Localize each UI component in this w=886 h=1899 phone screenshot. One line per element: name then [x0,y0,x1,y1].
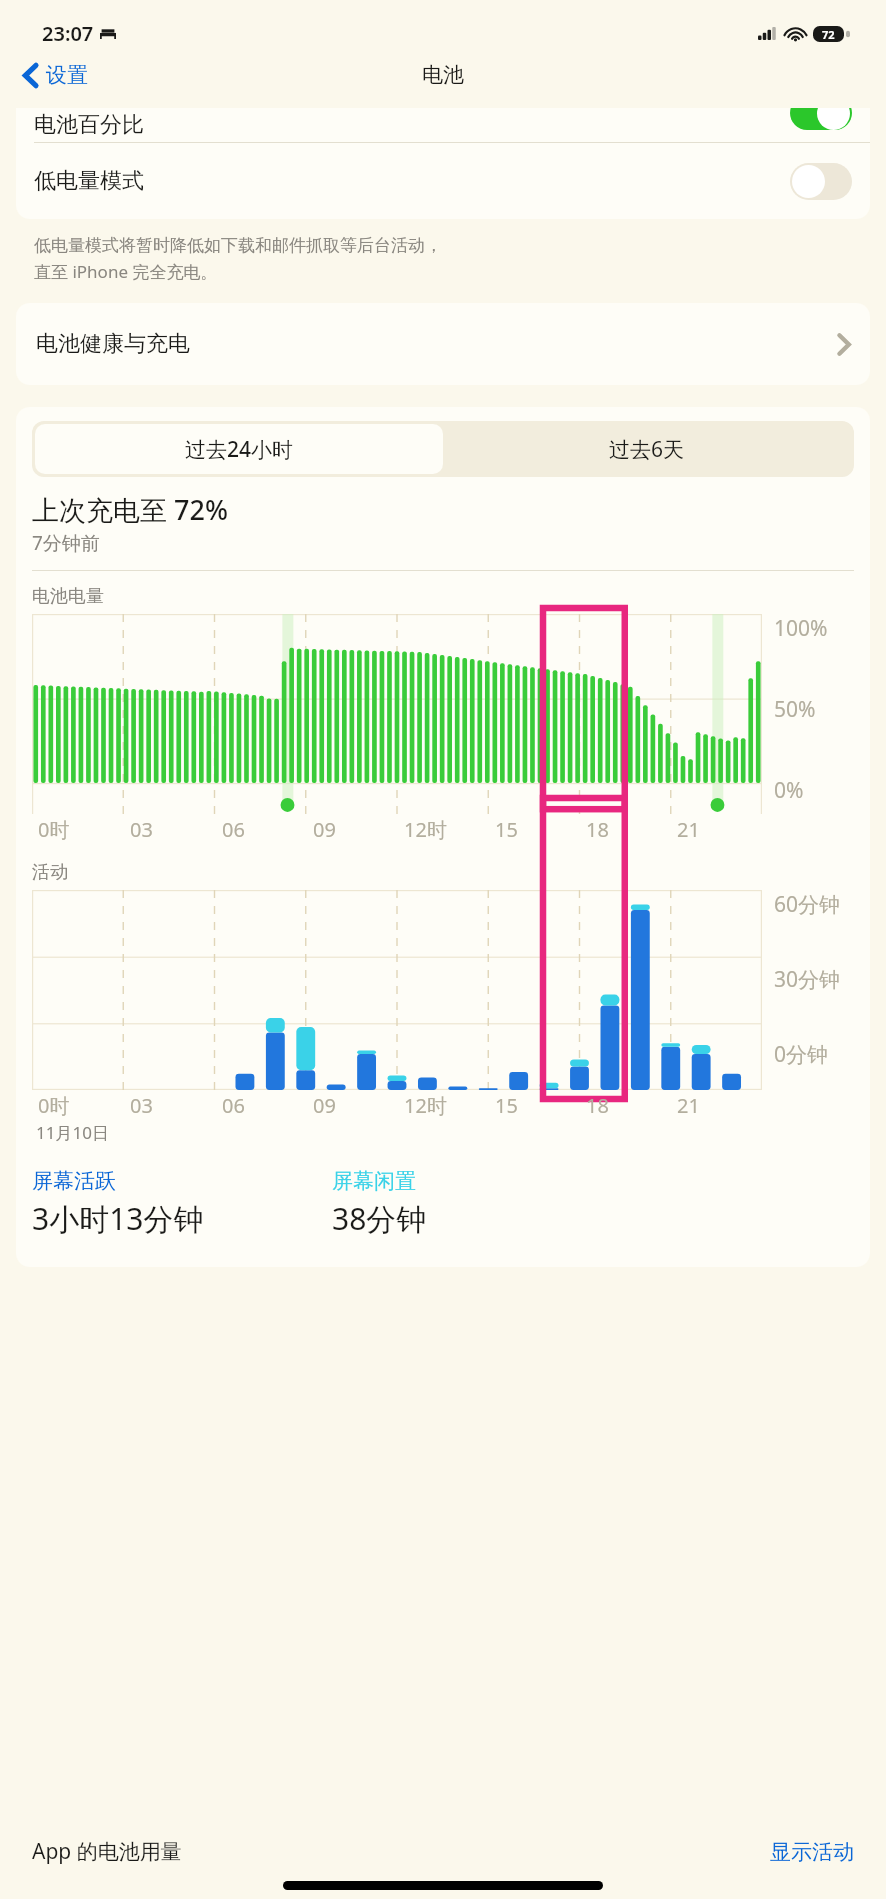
staticText: 电池百分比 [34,111,144,139]
staticText: 活动 [32,861,68,884]
staticText: 60分钟 [774,890,841,919]
button[interactable]: 低电量模式 [16,143,870,219]
staticText: 03 [130,816,153,843]
staticText: 23:07 [42,20,94,47]
staticText: 50% [774,695,816,724]
button[interactable]: App 的电池用量 [32,1837,182,1866]
staticText: 30分钟 [774,965,841,994]
button[interactable]: Toggle off [790,163,852,200]
button[interactable]: 过去24小时 [35,424,443,474]
staticText: 屏幕活跃 [32,1168,116,1194]
staticText: 11月10日 [36,1121,109,1144]
button[interactable]: 显示活动 [770,1839,854,1865]
staticText: 03 [130,1092,153,1119]
staticText: 低电量模式将暂时降低如下载和邮件抓取等后台活动， 直至 iPhone 完全充电。 [34,235,442,283]
staticText: 06 [222,816,245,843]
staticText: 过去24小时 [185,435,294,464]
staticText: 12时 [404,1092,447,1119]
staticText: 低电量模式 [34,167,144,195]
staticText: 09 [313,816,336,843]
staticText: 上次充电至 72% [32,491,228,528]
staticText: 电池 [422,62,464,88]
button[interactable]: 电池百分比 [16,108,870,142]
button[interactable]: Toggle on [790,108,852,130]
staticText: 0时 [38,816,70,843]
staticText: 06 [222,1092,245,1119]
staticText: 15 [495,816,518,843]
staticText: 0时 [38,1092,70,1119]
staticText: 过去6天 [609,435,685,464]
staticText: 3小时13分钟 [32,1198,204,1239]
staticText: 12时 [404,816,447,843]
staticText: 15 [495,1092,518,1119]
staticText: 100% [774,614,828,643]
staticText: 18 [586,1092,609,1119]
button[interactable]: 设置 [16,58,96,92]
staticText: 设置 [46,62,88,88]
staticText: 72 [822,27,835,42]
staticText: 18 [586,816,609,843]
button[interactable]: 电池健康与充电 [16,303,870,385]
staticText: 电池电量 [32,585,104,608]
staticText: 0% [774,776,804,805]
staticText: 电池健康与充电 [36,330,190,358]
button[interactable]: 过去6天 [443,424,851,474]
staticText: 21 [677,1092,700,1119]
staticText: 21 [677,816,700,843]
staticText: 09 [313,1092,336,1119]
staticText: 7分钟前 [32,530,100,556]
staticText: 0分钟 [774,1040,829,1069]
staticText: 屏幕闲置 [332,1168,416,1194]
staticText: 38分钟 [332,1198,427,1239]
